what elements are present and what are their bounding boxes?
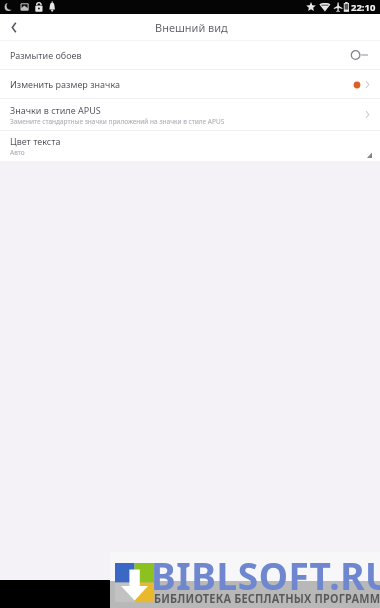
- staticText: Значки в стиле APUS: [10, 104, 101, 116]
- button[interactable]: Изменить размер значка: [0, 70, 380, 98]
- button[interactable]: Размытие обоев: [0, 41, 380, 69]
- button[interactable]: Back: [0, 14, 28, 41]
- button[interactable]: Значки в стиле APUS: [0, 99, 380, 130]
- staticText: Цвет текста: [10, 135, 61, 147]
- staticText: Замените стандартные значки приложений н…: [10, 117, 225, 126]
- staticText: BIBLSOFT.RU: [151, 550, 380, 600]
- staticText: БИБЛИОТЕКА БЕСПЛАТНЫХ ПРОГРАММ: [154, 590, 380, 607]
- staticText: 22:10: [351, 1, 376, 14]
- staticText: Изменить размер значка: [10, 78, 120, 90]
- staticText: Внешний вид: [155, 20, 228, 35]
- staticText: Авто: [10, 148, 25, 157]
- button[interactable]: Цвет текста: [0, 131, 380, 161]
- staticText: Размытие обоев: [10, 49, 82, 61]
